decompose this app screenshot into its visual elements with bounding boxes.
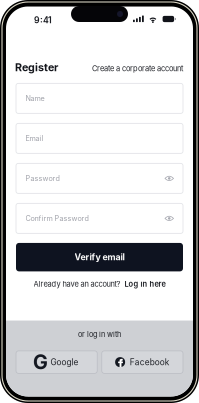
staticText: Create a corporate account (92, 64, 183, 73)
staticText: Google (50, 357, 78, 367)
staticText: Log in here (124, 279, 165, 288)
staticText: Name (25, 94, 44, 103)
staticText: Facebook (130, 357, 170, 367)
staticText: 9:41 (34, 15, 52, 25)
button[interactable]: G (16, 351, 97, 373)
staticText: Confirm Password (25, 214, 88, 223)
staticText: Already have an account? (33, 279, 120, 288)
staticText: Verify email (74, 252, 124, 262)
staticText: or log in with (78, 330, 121, 339)
button[interactable]: Create a corporate account (92, 64, 183, 73)
staticText: Email (25, 134, 43, 143)
button[interactable]: Confirm Password (16, 203, 183, 233)
button[interactable]: Verify email (16, 243, 183, 271)
button[interactable]: Facebook (102, 351, 183, 373)
staticText: Password (25, 174, 59, 183)
staticText: Register (15, 61, 58, 74)
button[interactable]: Name (16, 83, 183, 113)
button[interactable]: Password (16, 163, 183, 193)
button[interactable]: Email (16, 123, 183, 153)
button[interactable]: Already have an account? (33, 279, 165, 288)
staticText: G (33, 350, 48, 374)
